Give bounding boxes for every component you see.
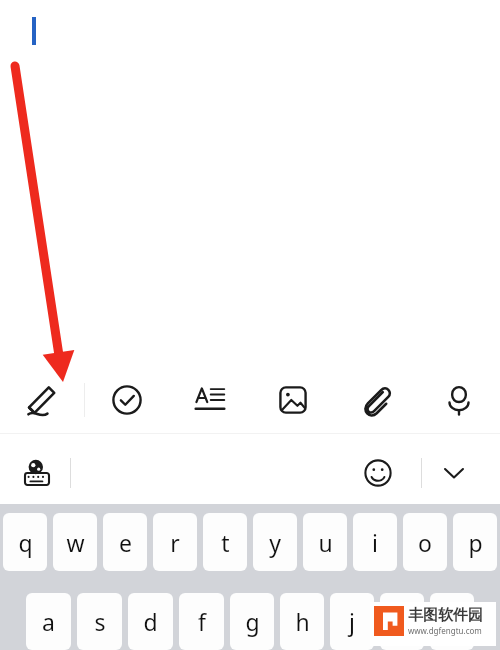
staticText: k (396, 606, 409, 637)
staticText: l (449, 606, 455, 637)
staticText: a (42, 606, 55, 637)
button[interactable]: Attach file (334, 367, 417, 433)
staticText: o (418, 527, 432, 558)
staticText: w (66, 527, 85, 558)
button[interactable]: h (280, 593, 324, 650)
staticText: u (318, 527, 333, 558)
staticText: g (245, 606, 260, 637)
button[interactable]: y (253, 513, 297, 571)
staticText: h (295, 606, 310, 637)
button[interactable]: q (3, 513, 47, 571)
button[interactable]: t (203, 513, 247, 571)
button[interactable]: Hide keyboard (430, 449, 478, 497)
button[interactable]: s (77, 593, 122, 650)
staticText: d (143, 606, 158, 637)
staticText: f (198, 606, 206, 637)
button[interactable]: k (380, 593, 424, 650)
staticText: t (221, 527, 230, 558)
staticText: r (170, 527, 180, 558)
staticText: e (119, 527, 132, 558)
button[interactable]: Signature (0, 367, 84, 433)
button[interactable]: j (330, 593, 374, 650)
button[interactable]: d (128, 593, 173, 650)
staticText: y (269, 527, 281, 558)
staticText: i (372, 527, 378, 558)
button[interactable]: Text formatting (168, 367, 251, 433)
button[interactable]: Checklist (85, 367, 168, 433)
staticText: s (94, 606, 106, 637)
button[interactable]: l (430, 593, 474, 650)
button[interactable]: w (53, 513, 97, 571)
button[interactable]: o (403, 513, 447, 571)
button[interactable]: f (179, 593, 224, 650)
staticText: q (18, 527, 33, 558)
button[interactable]: e (103, 513, 147, 571)
button[interactable]: r (153, 513, 197, 571)
staticText: 丰图软件园 (408, 606, 483, 625)
button[interactable]: p (453, 513, 497, 571)
button[interactable]: i (353, 513, 397, 571)
staticText: www.dgfengtu.com (408, 625, 482, 636)
button[interactable]: u (303, 513, 347, 571)
button[interactable]: Insert photo (251, 367, 334, 433)
button[interactable]: g (230, 593, 274, 650)
button[interactable]: Voice input (417, 367, 500, 433)
staticText: j (349, 606, 355, 637)
button[interactable]: Switch language (12, 448, 62, 498)
button[interactable]: Emoji (354, 449, 402, 497)
staticText: p (468, 527, 483, 558)
button[interactable]: a (26, 593, 71, 650)
